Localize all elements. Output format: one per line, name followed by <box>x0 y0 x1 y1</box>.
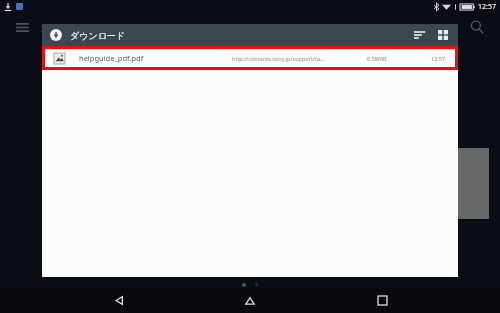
button[interactable]: Grid view <box>434 26 452 44</box>
staticText: 12:57 <box>431 55 446 62</box>
staticText: 12:57 <box>478 2 496 12</box>
button[interactable]: Menu <box>10 15 34 39</box>
button[interactable]: Recent apps <box>369 288 395 313</box>
button[interactable]: Sort <box>410 26 428 44</box>
staticText: ダウンロード <box>70 30 126 41</box>
staticText: カスタム <box>40 21 81 34</box>
button[interactable]: Home <box>237 288 263 313</box>
button[interactable]: Search <box>464 14 490 40</box>
button[interactable]: Back <box>106 288 132 313</box>
button[interactable]: helpguide_pdf.pdf <box>42 46 458 70</box>
staticText: http://contents.sony.jp/support/ta... <box>232 55 325 62</box>
staticText: 6.58MB <box>367 55 387 62</box>
staticText: helpguide_pdf.pdf <box>79 53 144 63</box>
